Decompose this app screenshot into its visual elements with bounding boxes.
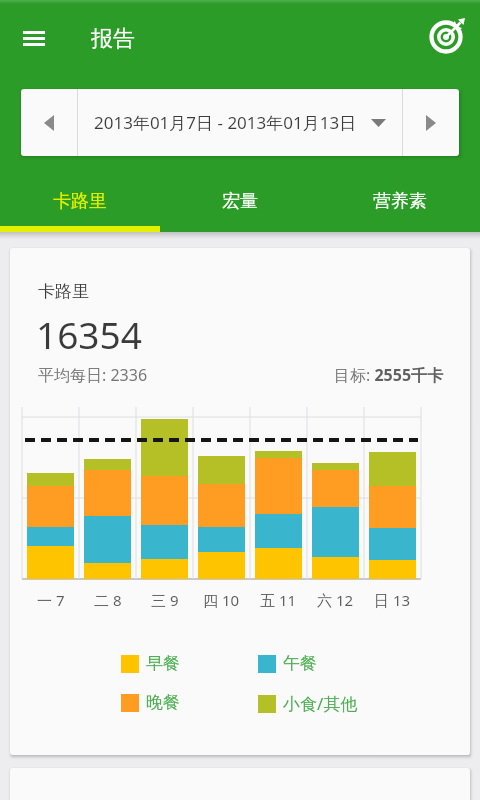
button[interactable] [21,89,77,156]
button[interactable] [423,16,467,60]
button[interactable] [12,16,56,60]
staticText: 六 12 [317,590,354,610]
staticText: 2013年01月7日 - 2013年01月13日 [94,111,357,134]
staticText: 卡路里 [38,281,89,302]
staticText: 日 13 [374,590,411,610]
staticText: 16354 [36,309,142,359]
button[interactable] [403,89,459,156]
button[interactable]: 卡路里 [0,170,160,232]
staticText: 早餐 [146,653,180,674]
staticText: 五 11 [260,590,297,610]
button[interactable]: 2013年01月7日 - 2013年01月13日 [78,89,402,156]
staticText: 三 9 [151,590,179,610]
staticText: 卡路里 [53,190,107,213]
staticText: 宏量 [222,190,258,213]
staticText: 平均每日: 2336 [38,364,148,386]
staticText: 报告 [91,25,135,53]
staticText: 目标: 2555千卡 [334,364,444,386]
staticText: 一 7 [37,590,65,610]
staticText: 营养素 [373,190,427,213]
button[interactable]: 营养素 [320,170,480,232]
staticText: 小食/其他 [283,692,358,715]
staticText: 二 8 [94,590,122,610]
staticText: 四 10 [203,590,240,610]
staticText: 午餐 [283,653,317,674]
button[interactable]: 宏量 [160,170,320,232]
staticText: 晚餐 [146,692,180,713]
